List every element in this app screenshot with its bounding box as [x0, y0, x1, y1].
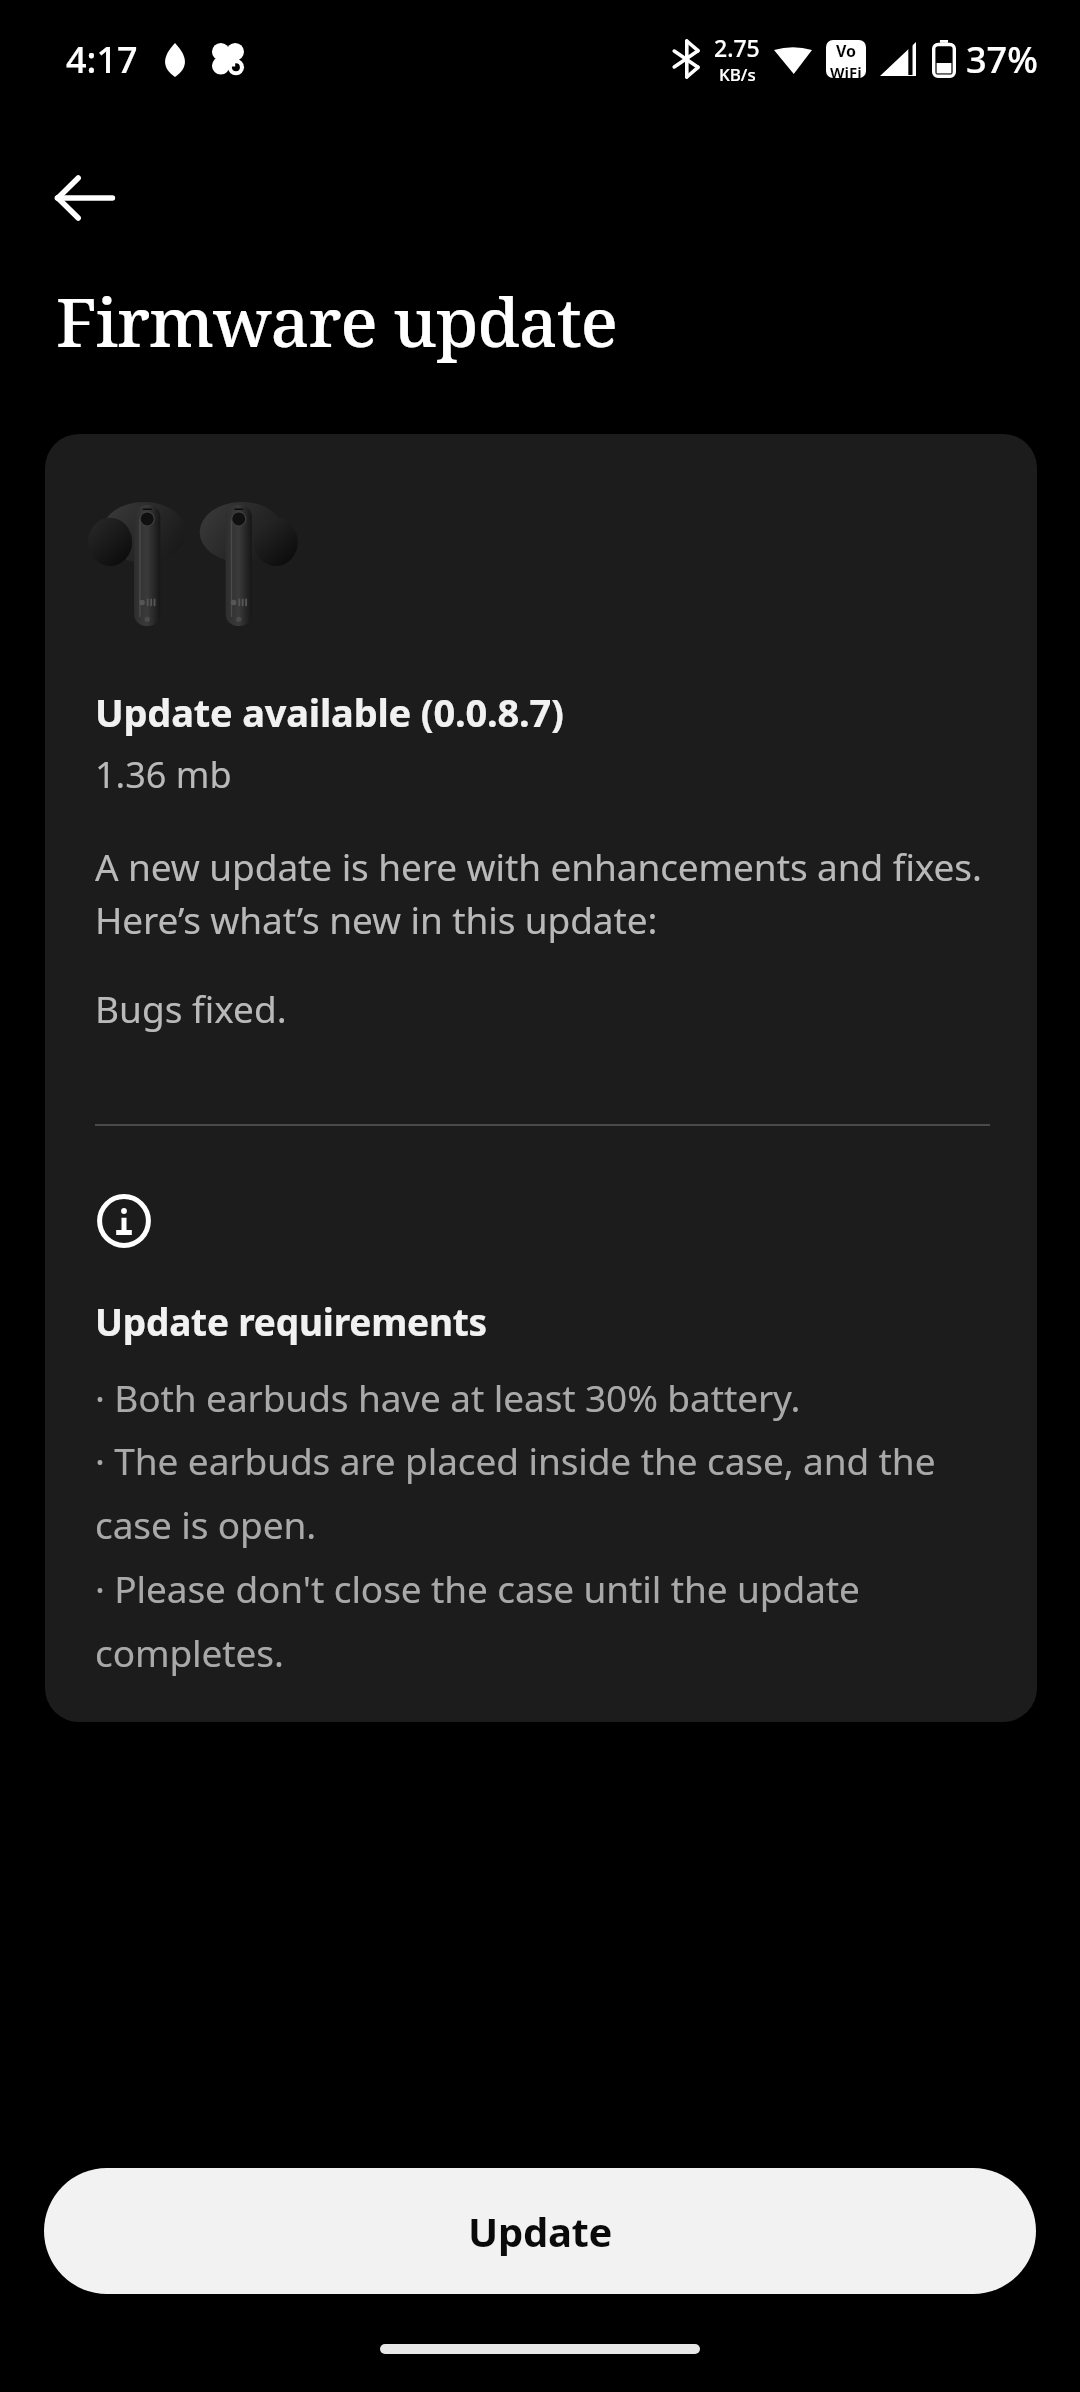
- staticText: A new update is here with enhancements a…: [95, 841, 990, 945]
- staticText: Firmware update: [56, 274, 617, 367]
- button[interactable]: Update: [44, 2168, 1036, 2294]
- staticText: Update available (0.0.8.7): [95, 686, 564, 738]
- staticText: Bugs fixed.: [95, 983, 287, 1033]
- staticText: Update requirements: [95, 1296, 487, 1346]
- staticText: · Both earbuds have at least 30% battery…: [95, 1372, 995, 1678]
- staticText: 4:17: [66, 35, 138, 84]
- staticText: Update: [468, 2204, 613, 2258]
- staticText: 1.36 mb: [95, 750, 232, 799]
- button[interactable]: Back: [44, 158, 124, 238]
- staticText: WiFi: [830, 62, 862, 78]
- staticText: 37%: [966, 35, 1038, 84]
- staticText: KB/s: [719, 63, 756, 86]
- staticText: 2.75: [714, 32, 760, 63]
- staticText: Vo: [836, 40, 857, 62]
